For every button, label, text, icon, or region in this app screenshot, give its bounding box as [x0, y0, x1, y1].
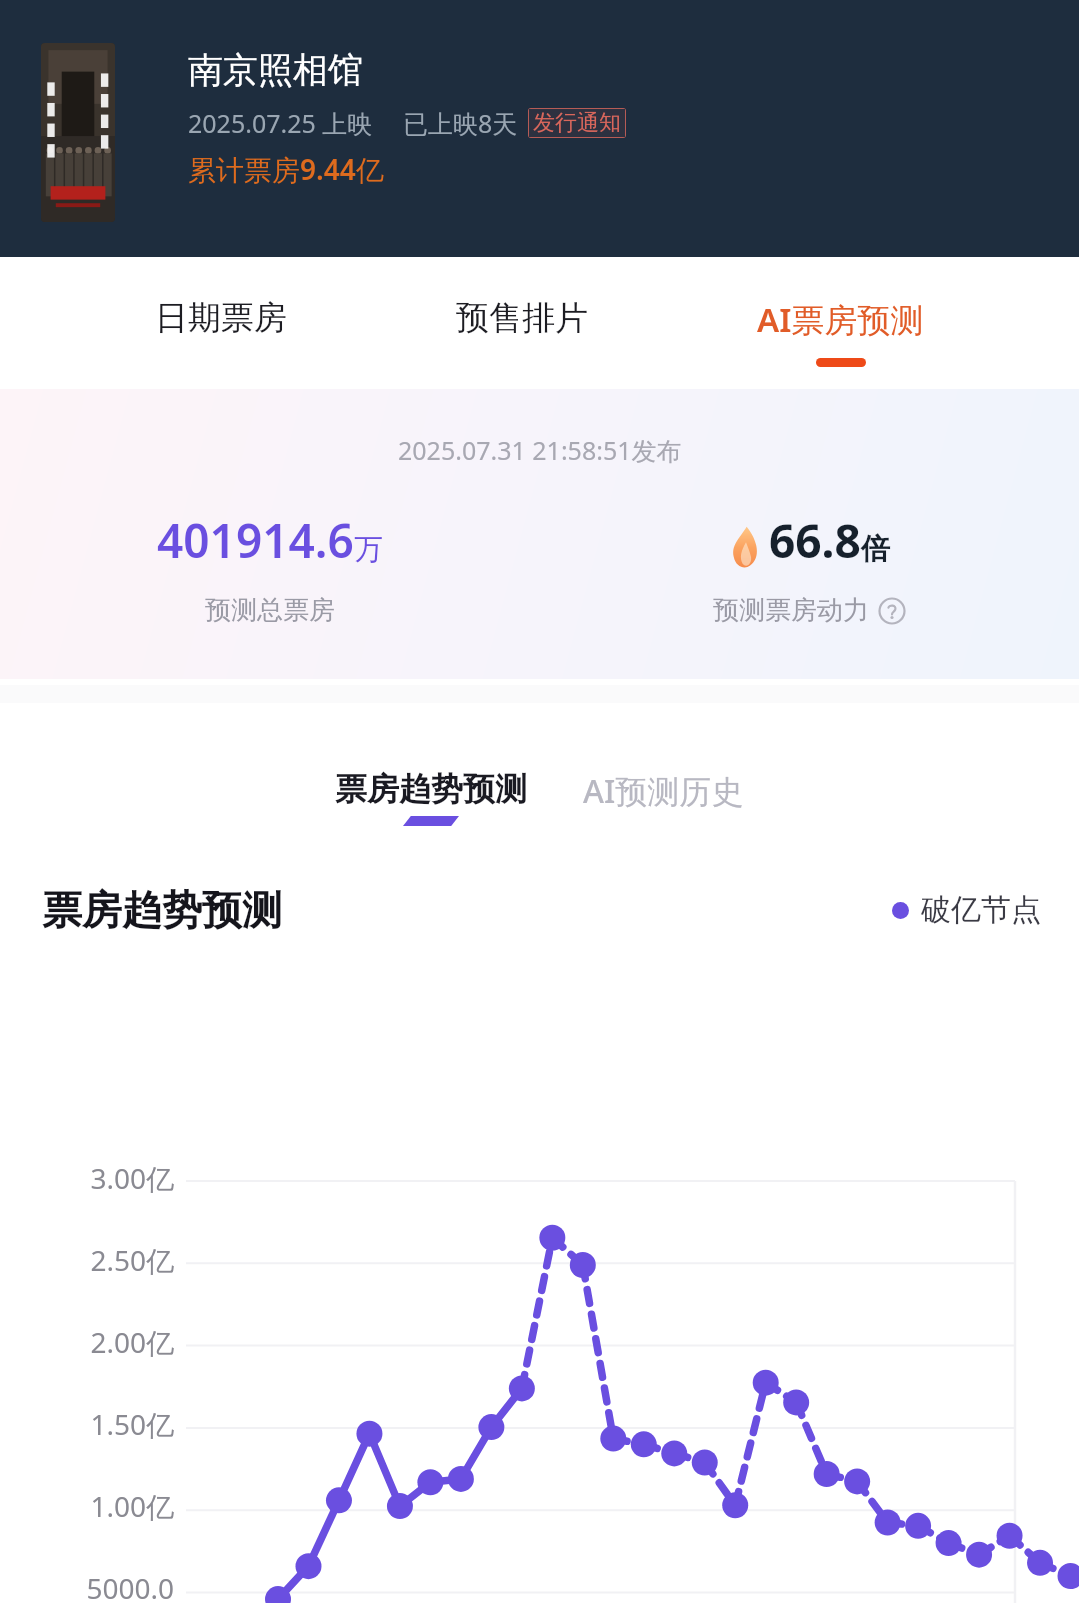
button[interactable]: 日期票房 — [147, 291, 295, 370]
button[interactable]: Movie poster — [41, 43, 115, 222]
other: Help — [878, 597, 906, 625]
staticText: 票房趋势预测 — [42, 885, 282, 935]
staticText: AI票房预测 — [757, 297, 924, 342]
staticText: 401914.6 — [157, 509, 354, 572]
staticText: 66.8 — [769, 509, 861, 572]
staticText: 累计票房9.44亿 — [188, 150, 384, 188]
staticText: 2025.07.25 上映 — [188, 106, 373, 140]
staticText: 预测总票房 — [205, 594, 335, 627]
button[interactable]: 票房趋势预测 — [329, 769, 533, 826]
staticText: 预售排片 — [456, 297, 588, 339]
staticText: 万 — [354, 531, 383, 568]
staticText: 破亿节点 — [921, 891, 1041, 929]
staticText: 发行通知 — [533, 109, 621, 137]
button[interactable]: 预售排片 — [448, 291, 596, 370]
staticText: 2.00亿 — [90, 1323, 174, 1361]
button[interactable]: 预测票房动力 — [713, 594, 906, 627]
staticText: 5000.0万 — [74, 1569, 174, 1603]
button[interactable]: 破亿节点 — [892, 891, 1041, 929]
staticText: 1.00亿 — [90, 1487, 174, 1525]
staticText: 南京照相馆 — [188, 48, 363, 92]
staticText: AI预测历史 — [583, 769, 744, 813]
staticText: 2025.07.31 21:58:51发布 — [398, 433, 682, 467]
button[interactable]: 发行通知 — [528, 108, 626, 138]
button[interactable]: AI票房预测 — [749, 291, 932, 373]
staticText: 预测票房动力 — [713, 594, 869, 627]
staticText: 1.50亿 — [90, 1405, 174, 1443]
staticText: 日期票房 — [155, 297, 287, 339]
staticText: 2.50亿 — [90, 1241, 174, 1279]
staticText: 票房趋势预测 — [335, 769, 527, 809]
staticText: 倍 — [861, 531, 890, 568]
staticText: 已上映8天 — [403, 106, 518, 140]
button[interactable]: AI预测历史 — [577, 769, 750, 813]
staticText: 3.00亿 — [90, 1159, 174, 1197]
